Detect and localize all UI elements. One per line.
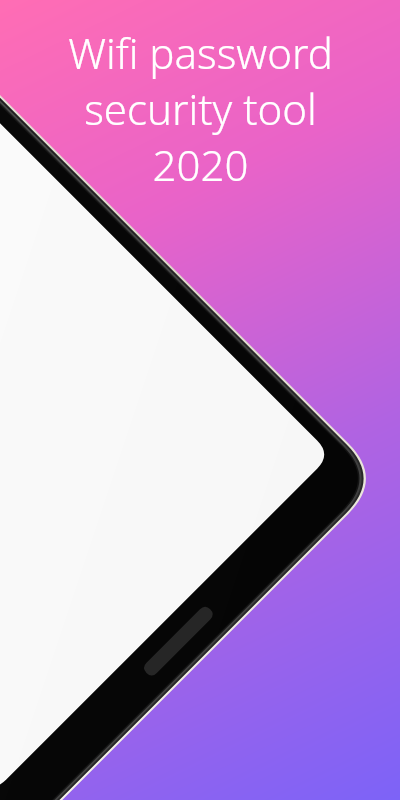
staticText: Wifi password security tool 2020: [68, 24, 333, 193]
